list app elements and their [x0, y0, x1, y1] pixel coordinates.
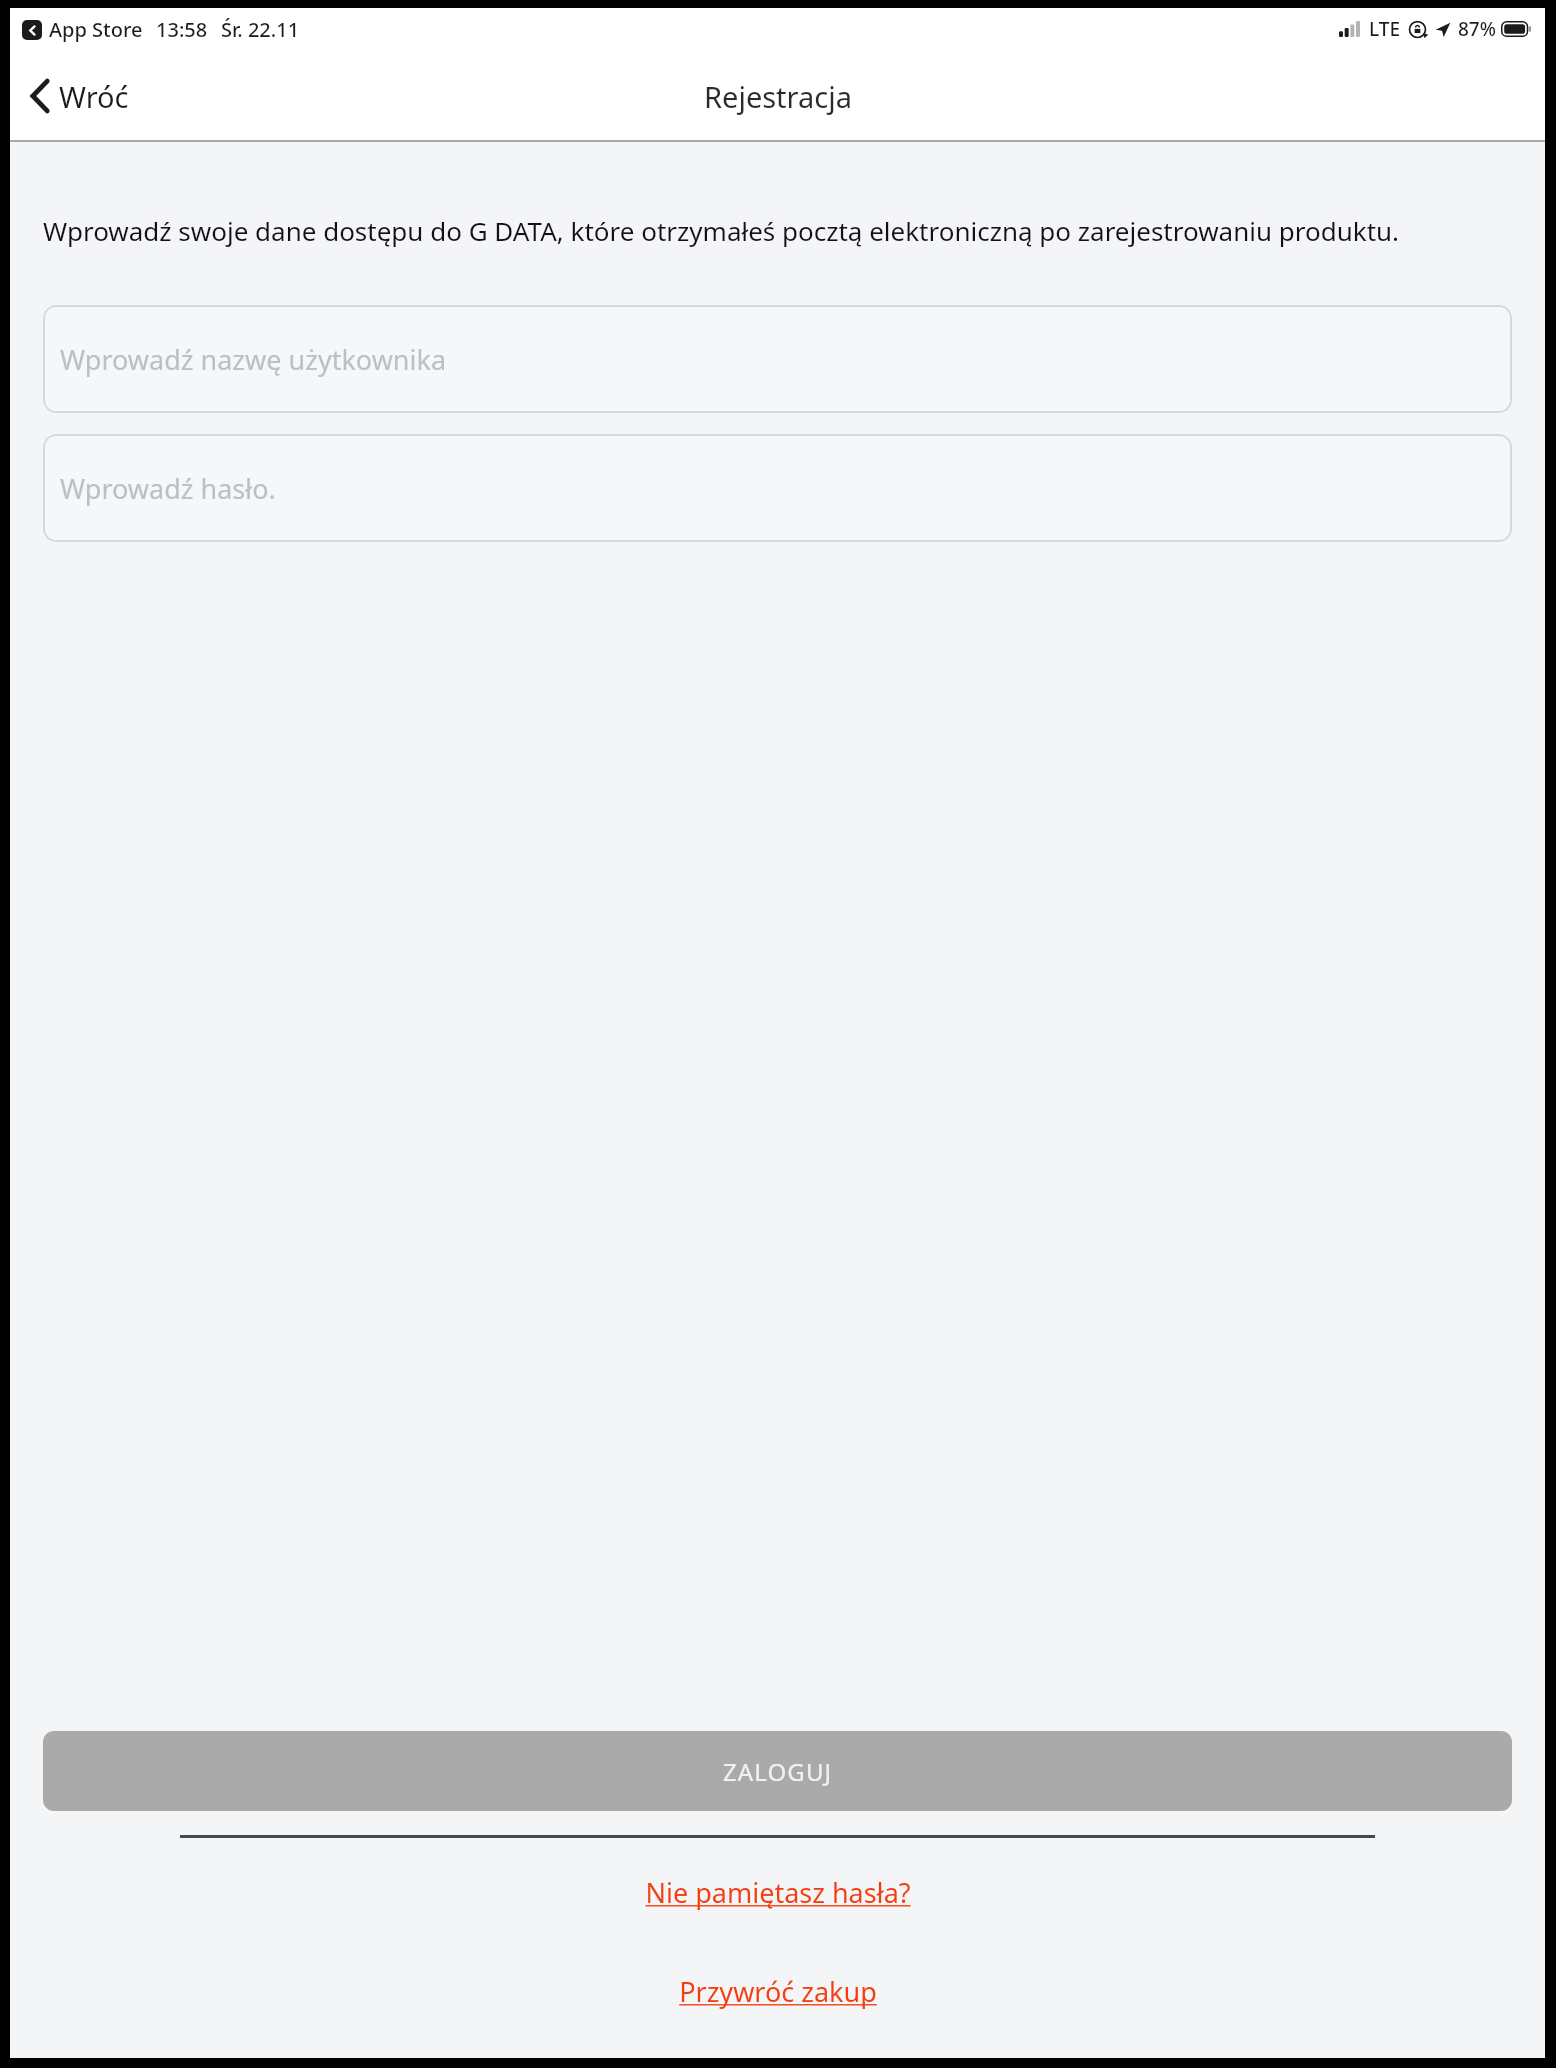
- button[interactable]: Wróć: [10, 50, 151, 142]
- button[interactable]: Przywróć zakup: [10, 1973, 1545, 2010]
- staticText: Śr. 22.11: [221, 16, 300, 43]
- staticText: LTE: [1369, 16, 1401, 42]
- staticText: Przywróć zakup: [679, 1973, 877, 2010]
- button[interactable]: Wprowadź nazwę użytkownika: [43, 305, 1512, 413]
- staticText: Nie pamiętasz hasła?: [645, 1874, 911, 1911]
- staticText: Wprowadź nazwę użytkownika: [60, 341, 447, 378]
- staticText: 87%: [1458, 16, 1496, 42]
- button[interactable]: Nie pamiętasz hasła?: [10, 1874, 1545, 1911]
- staticText: ZALOGUJ: [723, 1755, 833, 1788]
- staticText: Wprowadź hasło.: [60, 470, 276, 507]
- staticText: 13:58: [156, 16, 208, 43]
- button[interactable]: Wprowadź hasło.: [43, 434, 1512, 542]
- staticText: Wprowadź swoje dane dostępu do G DATA, k…: [43, 213, 1512, 248]
- staticText: Wróć: [59, 77, 129, 116]
- staticText: Rejestracja: [704, 77, 852, 116]
- staticText: App Store: [49, 16, 143, 43]
- button[interactable]: ZALOGUJ: [43, 1731, 1512, 1811]
